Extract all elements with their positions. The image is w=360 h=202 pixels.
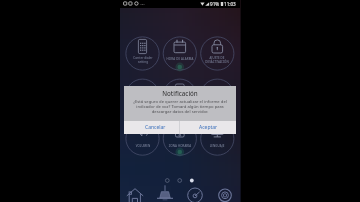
button[interactable]: Carrier dialer setting xyxy=(126,56,160,64)
staticText: Carrier dialer setting xyxy=(126,56,160,64)
staticText: ZONA HORARIA xyxy=(163,144,197,148)
staticText: Notificación xyxy=(124,89,236,97)
staticText: VOLUMEN xyxy=(126,144,160,148)
button[interactable]: ZONA HORARIA xyxy=(163,144,197,148)
button[interactable]: Speed xyxy=(180,180,210,202)
staticText: HORA DE ALARMA xyxy=(163,57,197,61)
staticText: 91% xyxy=(210,1,220,7)
staticText: Cancelar xyxy=(145,124,166,131)
staticText: 11:03 xyxy=(224,1,236,7)
button[interactable]: HORA DE ALARMA xyxy=(163,57,197,61)
button[interactable]: Profile xyxy=(210,180,240,202)
button[interactable]: Aceptar xyxy=(180,121,236,134)
button[interactable]: AJUSTE DE DESACTIVACIÓN xyxy=(200,56,234,64)
staticText: LENGUAJE xyxy=(200,144,234,148)
button[interactable]: LENGUAJE xyxy=(200,144,234,148)
staticText: ¿Está seguro de querer actualizar el inf… xyxy=(131,99,229,114)
staticText: Aceptar xyxy=(199,124,218,131)
button[interactable]: Cancelar xyxy=(124,121,179,134)
button[interactable]: Home xyxy=(120,180,150,202)
button[interactable]: Devices xyxy=(150,180,180,202)
button[interactable]: VOLUMEN xyxy=(126,144,160,148)
staticText: AJUSTE DE DESACTIVACIÓN xyxy=(200,56,234,64)
